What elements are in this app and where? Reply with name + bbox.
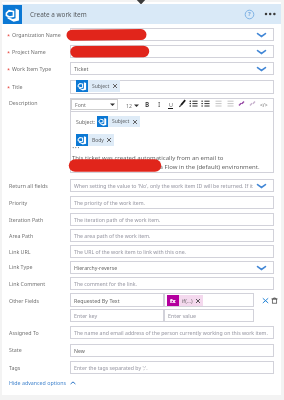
staticText: Subject [112,118,130,125]
button[interactable]: Font [71,99,118,110]
staticText: * [7,66,11,74]
staticText: Hide advanced options [9,379,67,386]
staticText: Create a work item [30,10,87,19]
staticText: Return all fields [9,182,48,189]
staticText: Priority [9,199,28,206]
staticText: Organization Name [12,31,61,38]
staticText: This ticket was created automatically fr… [72,154,224,162]
staticText: ? [248,10,251,18]
staticText: Other Fields [9,297,40,304]
button[interactable]: Requested By Text [70,293,164,307]
button[interactable]: Enter key [70,309,164,322]
button[interactable]: Italic [155,99,163,110]
staticText: * [7,32,11,40]
staticText: Link URL [9,248,31,255]
button[interactable]: Enter value [164,309,254,322]
staticText: Area Path [9,232,34,239]
staticText: Description [9,99,38,106]
staticText: The URL of the work item to link with th… [74,248,187,255]
staticText: y a Flow in the (default) environment. [155,163,260,171]
staticText: Subject: [76,118,96,125]
button[interactable]: The name and email address of the person… [70,326,274,339]
button[interactable] [70,28,274,41]
staticText: Subject [92,83,110,90]
staticText: Enter key [74,312,98,319]
button[interactable]: Underline [166,99,174,110]
staticText: * [7,49,11,57]
button[interactable]: Ticket [70,62,274,75]
staticText: Work Item Type [12,65,52,72]
button[interactable]: The comment for the link. [70,277,274,290]
button[interactable]: More options [262,8,277,20]
button[interactable]: New [70,344,274,357]
staticText: Tags [9,364,21,371]
staticText: Link Comment [9,280,46,287]
button[interactable]: Increase indent [225,99,234,110]
staticText: I [158,100,161,109]
staticText: Enter value [168,312,196,319]
button[interactable]: Create a work item [3,4,87,24]
staticText: U [169,101,173,108]
button[interactable]: Delete [270,296,279,305]
button[interactable]: Remove link [248,99,257,110]
button[interactable]: When setting the value to 'No', only the… [70,179,274,192]
staticText: B [145,100,150,109]
button[interactable]: The URL of the work item to link with th… [70,245,274,258]
button[interactable]: Subject [76,80,120,92]
staticText: Requested By Text [74,297,120,304]
staticText: When setting the value to 'No', only the… [74,182,253,189]
button[interactable]: 12 [126,100,139,110]
button[interactable] [70,98,274,173]
staticText: New [74,347,85,354]
button[interactable] [70,45,274,58]
staticText: Body [92,137,104,144]
button[interactable]: The priority of the work item. [70,196,274,209]
staticText: Hierarchy-reverse [74,264,118,271]
button[interactable]: Code view [258,99,270,111]
staticText: The area path of the work item. [74,232,151,239]
staticText: The name and email address of the person… [74,329,268,336]
button[interactable]: Bold [143,99,151,110]
button[interactable]: Help [243,8,255,20]
button[interactable]: Enter the tags separated by ';'. [70,361,274,374]
staticText: The iteration path of the work item. [74,216,161,223]
button[interactable]: Bulleted list [189,99,198,110]
staticText: fx [170,297,176,305]
staticText: The priority of the work item. [74,199,146,206]
staticText: if(...) [182,297,193,304]
staticText: State [9,346,22,353]
button[interactable]: Text highlight colour [178,99,187,110]
staticText: Ticket [74,65,89,72]
button[interactable]: Hide advanced options [9,379,76,386]
button[interactable]: Decrease indent [213,99,222,110]
button[interactable] [70,80,274,94]
button[interactable]: fx [164,293,254,307]
button[interactable]: Numbered list [201,99,210,110]
staticText: Iteration Path [9,216,44,223]
staticText: </> [260,102,268,109]
button[interactable]: Subject [97,116,140,127]
button[interactable]: Hierarchy-reverse [70,261,274,274]
staticText: Enter the tags separated by ';'. [74,364,148,371]
button[interactable]: Insert link [237,99,246,110]
staticText: Assigned To [9,329,39,336]
staticText: The comment for the link. [74,280,137,287]
staticText: Title [12,83,23,90]
staticText: 12 [126,102,132,109]
button[interactable]: The area path of the work item. [70,229,274,242]
staticText: Font [75,101,86,108]
button[interactable]: Clear [261,296,270,305]
button[interactable]: The iteration path of the work item. [70,213,274,226]
staticText: * [7,84,11,92]
staticText: Project Name [12,48,46,55]
staticText: Link Type [9,263,33,270]
button[interactable]: Body [76,134,114,146]
